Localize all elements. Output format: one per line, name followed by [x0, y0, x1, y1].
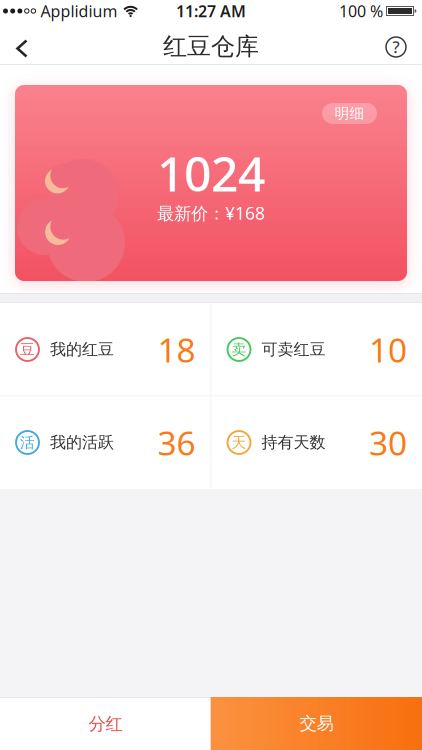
staticText: 36 — [157, 420, 195, 465]
staticText: 10 — [369, 327, 407, 372]
staticText: 最新价：¥168 — [157, 201, 265, 224]
button[interactable]: 天 — [211, 396, 422, 488]
staticText: ? — [392, 36, 399, 58]
button[interactable]: 交易 — [211, 697, 422, 750]
button[interactable]: 卖 — [211, 303, 422, 395]
staticText: Applidium — [41, 0, 118, 22]
button[interactable]: 分红 — [0, 697, 211, 750]
staticText: 分红 — [88, 713, 122, 735]
button[interactable]: 明细 — [322, 103, 377, 124]
staticText: 红豆仓库 — [163, 32, 259, 61]
button[interactable]: Back — [0, 22, 29, 64]
staticText: 活 — [20, 433, 35, 451]
staticText: 天 — [231, 433, 246, 451]
button[interactable]: Help — [386, 21, 422, 65]
staticText: 11:27 AM — [176, 0, 246, 22]
staticText: 30 — [369, 420, 407, 465]
staticText: 明细 — [334, 104, 364, 122]
staticText: 交易 — [299, 713, 333, 734]
staticText: 100 % — [339, 0, 383, 22]
staticText: 我的红豆 — [50, 340, 114, 359]
staticText: 可卖红豆 — [261, 340, 325, 359]
staticText: 豆 — [20, 340, 35, 358]
staticText: 卖 — [231, 340, 246, 358]
button[interactable]: 活 — [0, 396, 210, 488]
button[interactable]: 豆 — [0, 303, 210, 395]
staticText: 持有天数 — [261, 433, 325, 452]
staticText: 1024 — [157, 141, 265, 205]
staticText: 我的活跃 — [50, 433, 114, 452]
staticText: 18 — [157, 327, 195, 372]
